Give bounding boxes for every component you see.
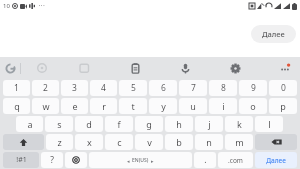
button[interactable]: u	[179, 98, 207, 114]
button[interactable]: b	[165, 134, 193, 150]
button[interactable]: At sign	[65, 152, 87, 168]
staticText: Далее	[266, 156, 286, 165]
button[interactable]: Далее	[251, 25, 296, 43]
button[interactable]: Google search	[0, 57, 20, 79]
button[interactable]: 0	[269, 80, 297, 96]
staticText: a	[27, 118, 33, 130]
staticText: i	[222, 100, 225, 112]
staticText: h	[176, 118, 182, 130]
button[interactable]: h	[165, 116, 193, 132]
staticText: f	[117, 118, 121, 130]
staticText: e	[72, 100, 78, 112]
staticText: ?	[50, 154, 54, 166]
button[interactable]: GIF	[75, 58, 95, 78]
staticText: 6	[161, 82, 166, 94]
button[interactable]: e	[61, 98, 88, 114]
button[interactable]: Space	[89, 152, 192, 168]
staticText: l	[268, 118, 271, 130]
button[interactable]: Backspace	[255, 134, 297, 150]
button[interactable]: 2	[32, 80, 59, 96]
staticText: 8	[221, 82, 226, 94]
staticText: x	[87, 136, 92, 148]
button[interactable]: More options	[274, 57, 296, 79]
staticText: t	[131, 100, 135, 112]
staticText: 0	[281, 82, 286, 94]
staticText: r	[102, 100, 106, 112]
button[interactable]: i	[209, 98, 237, 114]
staticText: 7	[191, 82, 196, 94]
staticText: 9	[251, 82, 256, 94]
button[interactable]: n	[195, 134, 223, 150]
button[interactable]: o	[239, 98, 267, 114]
staticText: ⋯	[38, 2, 45, 10]
staticText: z	[57, 136, 62, 148]
staticText: v	[147, 136, 152, 148]
button[interactable]: j	[195, 116, 223, 132]
button[interactable]: v	[135, 134, 163, 150]
staticText: w	[42, 100, 50, 112]
button[interactable]: f	[105, 116, 133, 132]
button[interactable]: t	[119, 98, 147, 114]
button[interactable]: Clipboard	[124, 57, 146, 79]
button[interactable]: l	[255, 116, 283, 132]
button[interactable]: 4	[90, 80, 117, 96]
button[interactable]: c	[105, 134, 133, 150]
button[interactable]: Shift	[3, 134, 44, 150]
button[interactable]: k	[225, 116, 253, 132]
button[interactable]: 3	[61, 80, 88, 96]
staticText: y	[161, 100, 166, 112]
button[interactable]: Voice input	[174, 57, 196, 79]
button[interactable]: Далее	[255, 152, 297, 168]
staticText: EN(US)	[132, 157, 149, 164]
button[interactable]: s	[45, 116, 73, 132]
staticText: s	[57, 118, 62, 130]
staticText: m	[235, 136, 244, 148]
staticText: .	[204, 154, 207, 166]
staticText: !#1	[16, 155, 27, 165]
staticText: n	[206, 136, 212, 148]
button[interactable]: ?	[41, 152, 63, 168]
button[interactable]: p	[269, 98, 297, 114]
button[interactable]: w	[32, 98, 59, 114]
button[interactable]: 1	[3, 80, 30, 96]
staticText: b	[176, 136, 182, 148]
staticText: o	[250, 100, 256, 112]
button[interactable]: 6	[149, 80, 177, 96]
staticText: d	[86, 118, 92, 130]
button[interactable]: Settings	[224, 57, 246, 79]
staticText: c	[117, 136, 122, 148]
staticText: 10	[3, 2, 10, 10]
staticText: 4	[101, 82, 106, 94]
staticText: 3	[72, 82, 77, 94]
staticText: j	[208, 118, 211, 130]
staticText: 5	[131, 82, 136, 94]
button[interactable]: q	[3, 98, 30, 114]
staticText: u	[190, 100, 196, 112]
button[interactable]: 5	[119, 80, 147, 96]
button[interactable]: z	[46, 134, 73, 150]
staticText: .com	[228, 156, 243, 165]
button[interactable]: 7	[179, 80, 207, 96]
staticText: k	[237, 118, 242, 130]
button[interactable]: d	[75, 116, 103, 132]
button[interactable]: Stickers	[32, 58, 52, 78]
button[interactable]: x	[75, 134, 103, 150]
staticText: Далее	[262, 29, 285, 39]
button[interactable]: 9	[239, 80, 267, 96]
staticText: ▸	[151, 158, 154, 164]
staticText: ◂	[127, 158, 130, 164]
staticText: g	[146, 118, 152, 130]
button[interactable]: 8	[209, 80, 237, 96]
staticText: 1	[14, 82, 19, 94]
button[interactable]: .com	[218, 152, 253, 168]
button[interactable]: r	[90, 98, 117, 114]
button[interactable]: y	[149, 98, 177, 114]
button[interactable]: .	[194, 152, 216, 168]
button[interactable]: !#1	[3, 152, 39, 168]
button[interactable]: g	[135, 116, 163, 132]
staticText: p	[280, 100, 286, 112]
staticText: 2	[43, 82, 48, 94]
staticText: q	[14, 100, 20, 112]
button[interactable]: m	[225, 134, 253, 150]
button[interactable]: a	[16, 116, 43, 132]
